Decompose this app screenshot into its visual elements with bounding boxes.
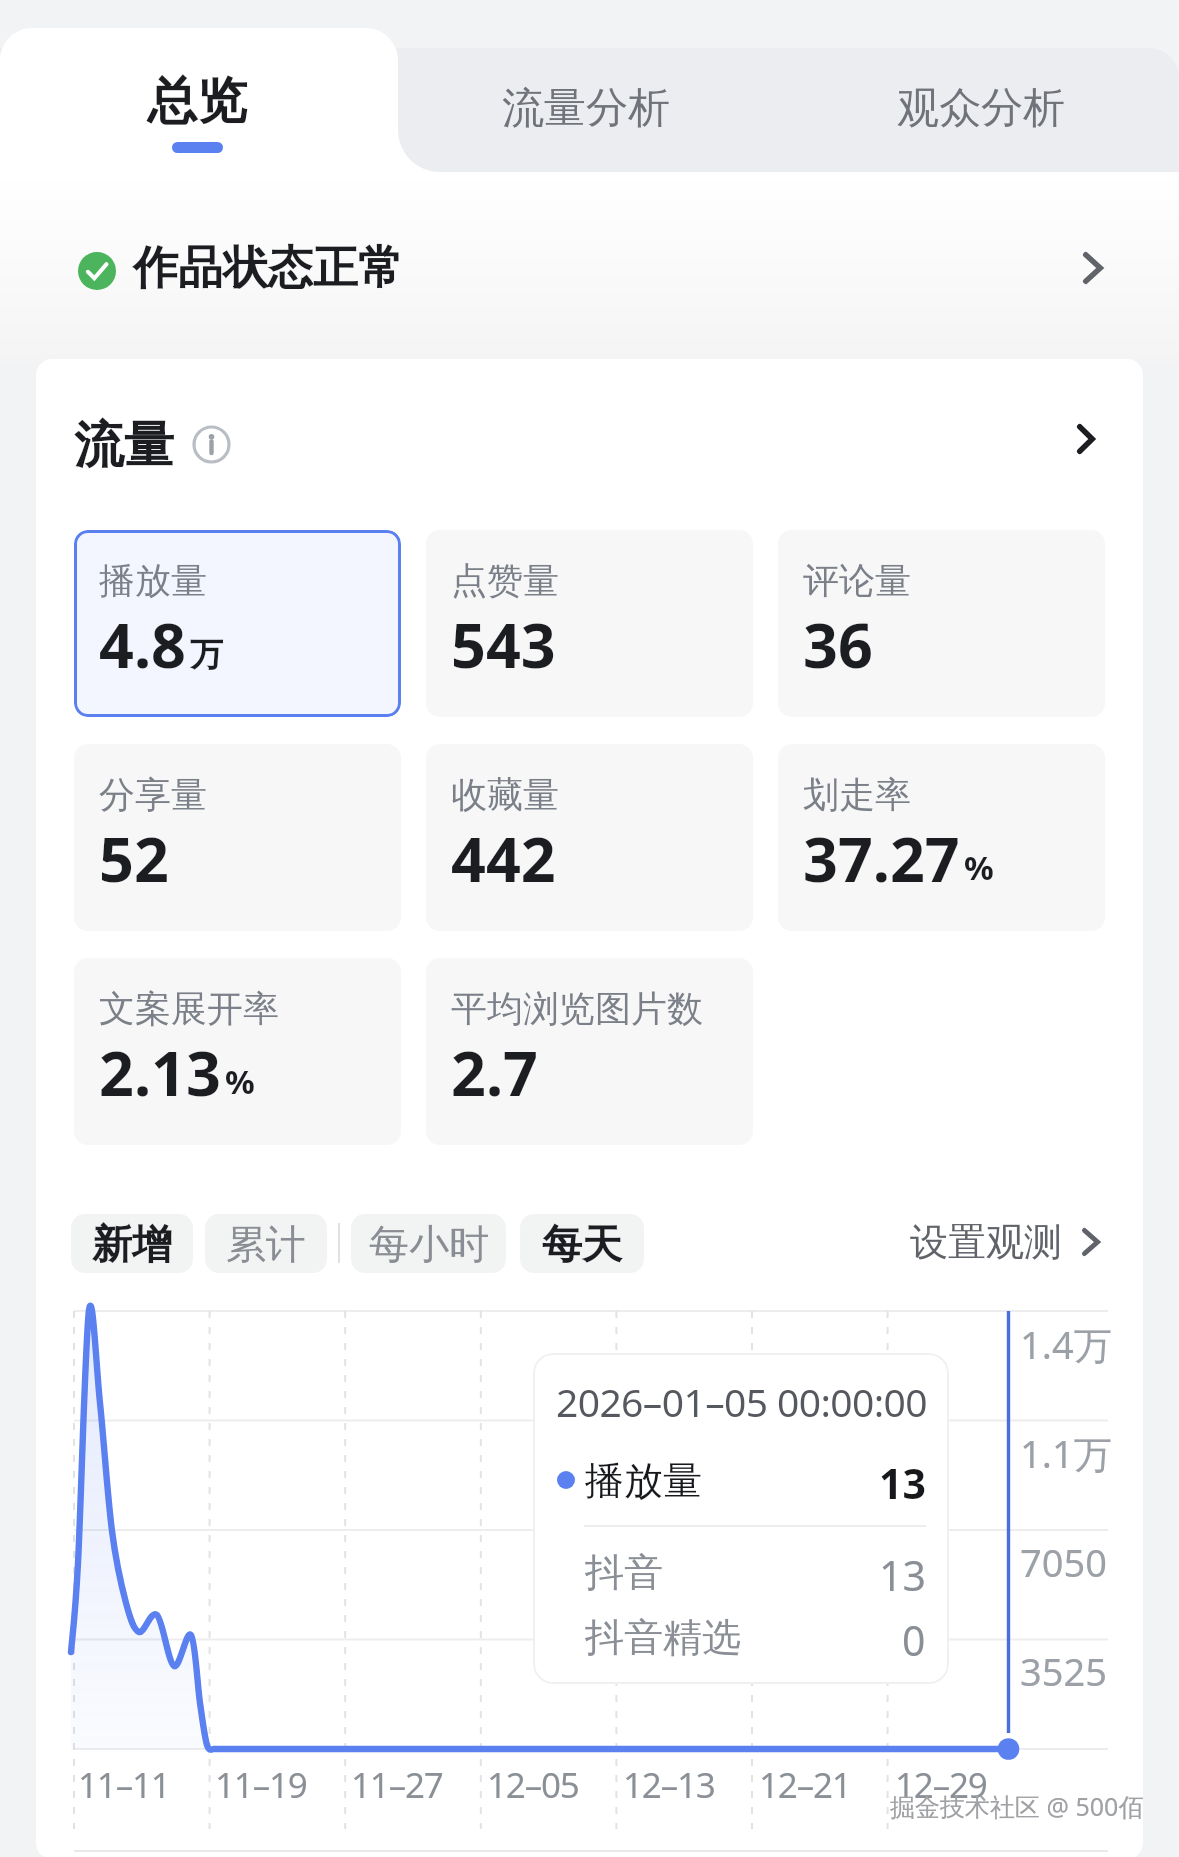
staticText: 442 <box>451 817 556 900</box>
button[interactable]: 流量分析 <box>436 48 736 168</box>
staticText: 543 <box>451 603 556 686</box>
staticText: 流量 <box>74 414 174 477</box>
button[interactable]: 收藏量 <box>426 744 753 931</box>
button[interactable]: 平均浏览图片数 <box>426 958 753 1145</box>
staticText: 划走率 <box>803 772 911 817</box>
staticText: 11–11 <box>78 1761 170 1809</box>
staticText: 7050 <box>1020 1536 1107 1588</box>
staticText: 观众分析 <box>897 82 1065 135</box>
staticText: 1.4万 <box>1020 1318 1112 1370</box>
staticText: 设置观测 <box>910 1218 1062 1266</box>
staticText: 万 <box>190 634 223 676</box>
staticText: 每小时 <box>369 1219 489 1269</box>
staticText: 新增 <box>92 1219 172 1269</box>
staticText: 2.7 <box>451 1031 538 1114</box>
staticText: 13 <box>879 1455 926 1505</box>
button[interactable]: 划走率 <box>778 744 1105 931</box>
staticText: 4.8 <box>99 603 186 686</box>
staticText: 1.1万 <box>1020 1427 1112 1479</box>
staticText: % <box>964 845 994 890</box>
staticText: 12–29 <box>895 1761 987 1809</box>
staticText: 37.27 <box>803 817 960 900</box>
button[interactable]: 点赞量 <box>426 530 753 717</box>
button[interactable]: 评论量 <box>778 530 1105 717</box>
button[interactable]: 设置观测 <box>910 1212 1101 1271</box>
button[interactable]: About traffic metrics <box>192 425 231 464</box>
button[interactable]: 分享量 <box>74 744 401 931</box>
button[interactable]: 作品状态正常 <box>0 218 1179 318</box>
staticText: 抖音精选 <box>585 1613 741 1662</box>
staticText: 12–21 <box>759 1761 851 1809</box>
staticText: 36 <box>803 603 873 686</box>
staticText: % <box>225 1059 255 1104</box>
staticText: 52 <box>99 817 169 900</box>
staticText: 平均浏览图片数 <box>451 986 703 1031</box>
staticText: 0 <box>902 1612 926 1662</box>
staticText: 累计 <box>226 1219 306 1269</box>
staticText: 12–05 <box>487 1761 579 1809</box>
button[interactable] <box>36 381 1143 491</box>
button[interactable]: 总览 <box>0 28 440 172</box>
staticText: 11–19 <box>215 1761 307 1809</box>
staticText: 2.13 <box>99 1031 221 1114</box>
staticText: 掘金技术社区 @ 500佰 <box>890 1789 1143 1823</box>
staticText: 流量分析 <box>502 82 670 135</box>
button[interactable]: 文案展开率 <box>74 958 401 1145</box>
button[interactable]: Traffic details <box>1056 409 1116 469</box>
button[interactable]: 每天 <box>520 1214 644 1273</box>
staticText: 点赞量 <box>451 558 559 603</box>
button[interactable]: 新增 <box>71 1214 193 1273</box>
staticText: 抖音 <box>585 1548 663 1597</box>
staticText: 播放量 <box>585 1456 702 1505</box>
staticText: 3525 <box>1020 1645 1107 1697</box>
staticText: 作品状态正常 <box>133 240 403 297</box>
staticText: 2026–01–05 00:00:00 <box>556 1375 927 1425</box>
button[interactable]: 每小时 <box>351 1214 506 1273</box>
button[interactable]: 累计 <box>205 1214 327 1273</box>
staticText: 分享量 <box>99 772 207 817</box>
staticText: 13 <box>879 1547 926 1597</box>
staticText: 评论量 <box>803 558 911 603</box>
staticText: 播放量 <box>99 558 207 603</box>
button[interactable]: 观众分析 <box>831 48 1131 168</box>
staticText: 每天 <box>542 1219 622 1269</box>
staticText: 文案展开率 <box>99 986 279 1031</box>
staticText: 总览 <box>147 70 247 133</box>
staticText: 12–13 <box>623 1761 715 1809</box>
staticText: 收藏量 <box>451 772 559 817</box>
staticText: 11–27 <box>351 1761 443 1809</box>
button[interactable]: 播放量 <box>74 530 401 717</box>
